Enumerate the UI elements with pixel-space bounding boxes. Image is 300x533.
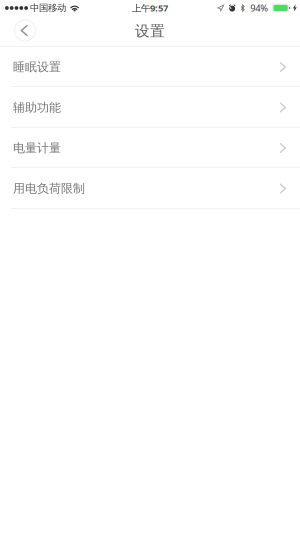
staticText: 中国移动 bbox=[30, 2, 66, 14]
staticText: 睡眠设置 bbox=[13, 60, 61, 74]
button[interactable]: 电量计量 bbox=[0, 128, 300, 168]
button[interactable]: Back bbox=[0, 18, 43, 46]
staticText: 辅助功能 bbox=[13, 100, 61, 115]
button[interactable]: 睡眠设置 bbox=[0, 47, 300, 87]
staticText: 电量计量 bbox=[13, 141, 61, 155]
staticText: 设置 bbox=[135, 22, 165, 40]
staticText: 用电负荷限制 bbox=[13, 181, 85, 196]
button[interactable]: 辅助功能 bbox=[0, 87, 300, 128]
staticText: 上午9:57 bbox=[132, 2, 168, 14]
staticText: 94% bbox=[250, 2, 268, 14]
button[interactable]: 用电负荷限制 bbox=[0, 168, 300, 209]
